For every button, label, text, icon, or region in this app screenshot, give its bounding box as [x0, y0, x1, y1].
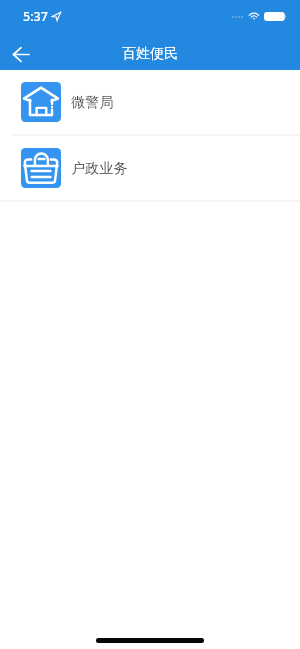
- staticText: 户政业务: [71, 159, 128, 177]
- button[interactable]: Back: [5, 38, 37, 70]
- staticText: 5:37: [23, 8, 48, 25]
- button[interactable]: 户政业务: [0, 136, 300, 200]
- button[interactable]: 微警局: [0, 70, 300, 134]
- staticText: 微警局: [71, 93, 114, 111]
- staticText: 百姓便民: [122, 45, 178, 63]
